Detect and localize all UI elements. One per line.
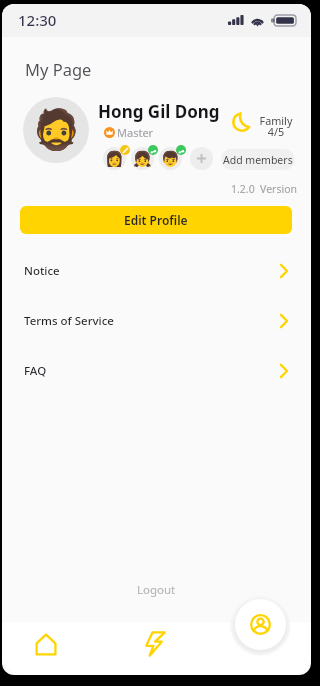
staticText: 👩 [105,150,124,168]
staticText: FAQ [24,363,47,379]
button[interactable]: Member [131,147,154,170]
staticText: Notice [24,263,60,279]
button[interactable]: Member [159,147,182,170]
button[interactable]: Notice [2,247,311,295]
button[interactable]: Terms of Service [2,297,311,345]
button[interactable]: Add members [221,149,295,170]
staticText: 👧 [133,150,152,168]
staticText: Add members [223,153,293,167]
staticText: Family 4/5 [256,113,296,140]
staticText: 👦 [161,150,180,168]
button[interactable]: Home [2,623,90,675]
button[interactable]: Member [103,147,126,170]
staticText: Logout [137,582,176,598]
staticText: My Page [25,58,92,80]
staticText: 1.2.0 Version [231,182,298,196]
button[interactable]: Logout [2,576,311,604]
button[interactable]: Edit Profile [20,206,292,234]
button[interactable]: Charge [110,623,198,675]
staticText: Hong Gil Dong [98,100,220,123]
staticText: Edit Profile [124,212,188,228]
staticText: 12:30 [18,10,57,30]
staticText: Terms of Service [24,313,114,329]
button[interactable]: FAQ [2,347,311,395]
staticText: 🧔 [32,107,81,153]
button[interactable]: My Page [235,599,286,650]
staticText: Master [117,125,154,140]
button[interactable]: Add member [190,147,213,170]
